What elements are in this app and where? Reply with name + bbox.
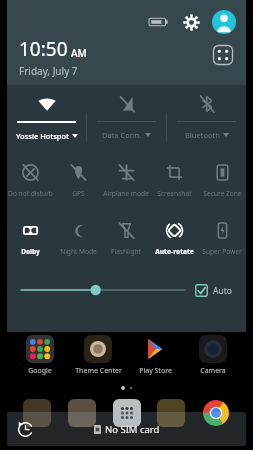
staticText: AM: [71, 46, 87, 60]
button[interactable]: Auto: [195, 284, 232, 297]
button[interactable]: Secure Zone: [198, 155, 246, 207]
staticText: Night Mode: [60, 247, 97, 256]
button[interactable]: [21, 277, 185, 303]
button[interactable]: Flashlight: [102, 213, 150, 265]
staticText: Camera: [200, 366, 226, 376]
staticText: Flashlight: [111, 247, 141, 256]
button[interactable]: Super Power: [198, 213, 246, 265]
staticText: Airplane mode: [103, 189, 149, 198]
staticText: Data Conn.: [102, 130, 142, 140]
staticText: Theme Center: [75, 366, 122, 376]
staticText: No SIM card: [105, 423, 160, 436]
button[interactable]: App: [68, 399, 96, 427]
staticText: Yossie Hotspot: [16, 131, 69, 141]
button[interactable]: GPS: [54, 155, 102, 207]
button[interactable]: User profile: [212, 10, 236, 34]
staticText: Auto: [213, 285, 232, 297]
button[interactable]: App: [23, 399, 51, 427]
staticText: Google: [28, 366, 52, 376]
button[interactable]: Airplane mode: [102, 155, 150, 207]
button[interactable]: Night Mode: [54, 213, 102, 265]
staticText: Friday, July 7: [19, 64, 78, 78]
staticText: Screenshot: [157, 189, 192, 198]
button[interactable]: Do not disturb: [7, 155, 54, 207]
button[interactable]: Recent notifications: [7, 412, 246, 446]
staticText: Dolby: [21, 247, 40, 256]
button[interactable]: Camera: [187, 334, 239, 376]
staticText: 10:50: [19, 36, 68, 62]
staticText: Bluetooth: [185, 130, 220, 140]
button[interactable]: App: [157, 399, 185, 427]
staticText: Do not disturb: [8, 189, 53, 198]
staticText: Super Power: [202, 247, 242, 256]
button[interactable]: Dolby: [7, 213, 54, 265]
button[interactable]: Screenshot: [150, 155, 198, 207]
button[interactable]: Expand quick settings: [212, 44, 234, 66]
button[interactable]: Settings: [180, 11, 202, 33]
button[interactable]: Chrome: [202, 399, 230, 427]
staticText: Secure Zone: [203, 189, 242, 198]
button[interactable]: Bluetooth: [167, 85, 246, 151]
button[interactable]: Yossie Hotspot: [7, 85, 86, 151]
button[interactable]: Google: [14, 334, 66, 376]
staticText: GPS: [72, 189, 85, 198]
button[interactable]: Data Conn.: [87, 85, 166, 151]
button[interactable]: Theme Center: [72, 334, 124, 376]
button[interactable]: Auto-rotate: [150, 213, 198, 265]
button[interactable]: Play Store: [129, 334, 181, 376]
staticText: Play Store: [139, 366, 172, 376]
staticText: Auto-rotate: [155, 247, 194, 256]
other: Recent notifications: [15, 419, 35, 439]
button[interactable]: All apps: [113, 399, 141, 427]
